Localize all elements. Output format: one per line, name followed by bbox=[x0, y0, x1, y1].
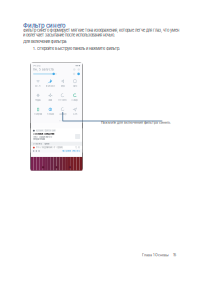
button[interactable]: Звук bbox=[56, 76, 69, 90]
staticText: GPS bbox=[73, 113, 77, 116]
staticText: Уведомление от сервиса bbox=[41, 146, 63, 149]
staticText: Почта bbox=[36, 146, 41, 149]
staticText: Ответить bbox=[33, 143, 42, 145]
staticText: и облегчает засыпание после использовани… bbox=[23, 33, 115, 37]
button[interactable]: Синхр. bbox=[69, 90, 81, 104]
staticText: Ночной bbox=[47, 113, 54, 116]
staticText: Авто bbox=[73, 85, 77, 87]
button[interactable]: Энергия bbox=[32, 104, 44, 118]
staticText: Нажмите для включения фильтра синего. bbox=[101, 120, 171, 124]
staticText: Энергия bbox=[34, 113, 42, 116]
staticText: 14:05 bbox=[33, 64, 41, 67]
staticText: Глава 1 Основы bbox=[142, 253, 169, 257]
button[interactable]: Фильтр bbox=[56, 104, 69, 118]
staticText: Не бесп. bbox=[58, 99, 67, 101]
staticText: Текст содержимого уведомления bbox=[33, 136, 52, 141]
staticText: Фильтр синего bbox=[23, 22, 66, 29]
staticText: 12:03 bbox=[75, 146, 80, 149]
staticText: Для включения фильтра: bbox=[23, 39, 67, 44]
button[interactable]: Авто bbox=[69, 76, 81, 90]
button[interactable]: Авиа bbox=[44, 90, 56, 104]
staticText: Фильтр синего формирует мягкие тона изоб… bbox=[23, 28, 179, 33]
button[interactable]: Wi-Fi bbox=[32, 76, 44, 90]
staticText: Очистить bbox=[72, 150, 80, 152]
staticText: Заголовок сообщения bbox=[33, 132, 54, 135]
staticText: Название приложения bbox=[36, 129, 56, 132]
staticText: Wi-Fi bbox=[35, 85, 41, 87]
staticText: Авиа bbox=[48, 99, 52, 101]
staticText: Архив bbox=[44, 143, 49, 145]
button[interactable]: Геодан. bbox=[32, 90, 44, 104]
button[interactable]: Не бесп. bbox=[56, 90, 69, 104]
staticText: Геодан. bbox=[34, 99, 41, 101]
staticText: 1. bbox=[33, 46, 36, 51]
staticText: 15 bbox=[169, 253, 176, 257]
staticText: Фильтр bbox=[59, 113, 66, 116]
staticText: Звук bbox=[61, 85, 65, 87]
staticText: Откройте Быструю панель и нажмите Фильтр… bbox=[37, 46, 120, 51]
staticText: Bluetooth bbox=[46, 85, 55, 87]
staticText: Синхр. bbox=[71, 99, 78, 101]
staticText: Настройки bbox=[62, 150, 71, 152]
button[interactable]: Ночной bbox=[44, 104, 56, 118]
button[interactable]: GPS bbox=[69, 104, 81, 118]
staticText: Пн, 5 августа bbox=[33, 68, 54, 71]
button[interactable]: Bluetooth bbox=[44, 76, 56, 90]
